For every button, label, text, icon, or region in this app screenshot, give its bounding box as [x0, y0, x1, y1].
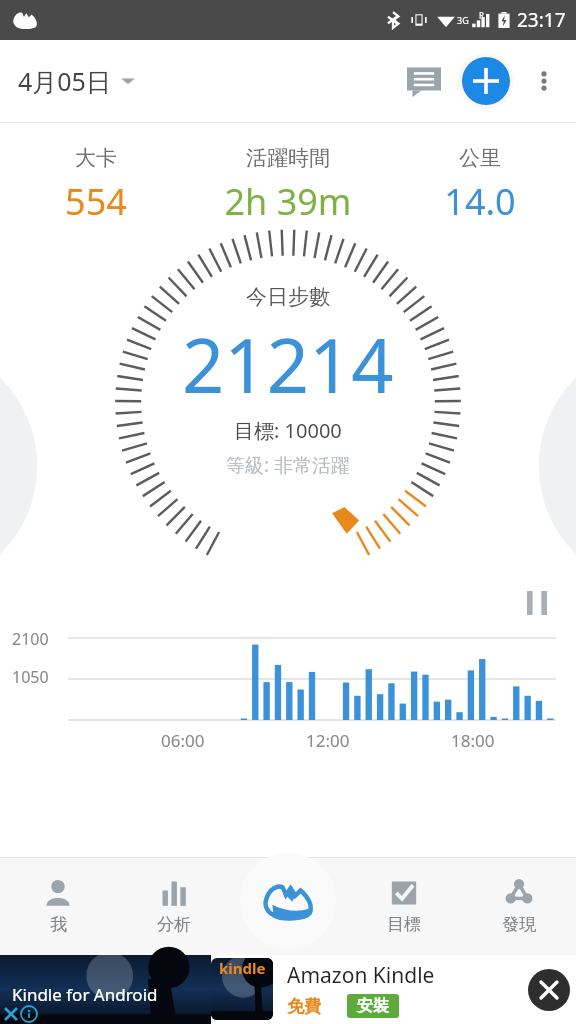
staticText: 3G [457, 14, 469, 26]
staticText: 分析 [157, 914, 191, 935]
staticText: 活躍時間 [246, 145, 330, 171]
staticText: 我 [50, 914, 67, 935]
staticText: 今日步數 [246, 284, 330, 310]
button[interactable]: Pause [520, 586, 554, 620]
staticText: R [479, 10, 484, 21]
staticText: 等級: 非常活躍 [226, 452, 351, 478]
button[interactable]: 安裝 [347, 994, 399, 1018]
button[interactable]: Close ad [2, 1005, 20, 1023]
staticText: 免費 [287, 996, 321, 1017]
staticText: Kindle for Android [12, 983, 158, 1006]
button[interactable]: 發現 [461, 857, 576, 955]
button[interactable]: Steps [240, 853, 336, 949]
button[interactable]: 我 [0, 857, 116, 955]
staticText: 公里 [459, 145, 501, 171]
staticText: 21214 [182, 314, 394, 415]
button[interactable]: 大卡 [0, 145, 192, 226]
staticText: 554 [65, 177, 127, 226]
staticText: 4月05日 [18, 64, 111, 98]
button[interactable]: More options [518, 55, 570, 107]
staticText: 18:00 [451, 729, 495, 752]
button[interactable]: Close advertisement [528, 969, 570, 1011]
staticText: 1050 [12, 666, 49, 688]
staticText: 安裝 [357, 996, 389, 1016]
button[interactable]: Add [454, 49, 518, 113]
button[interactable]: 活躍時間 [192, 145, 384, 226]
button[interactable]: 4月05日 [0, 56, 147, 106]
staticText: 23:17 [517, 7, 566, 33]
staticText: 2100 [12, 628, 49, 650]
staticText: 12:00 [306, 729, 350, 752]
staticText: 06:00 [161, 729, 205, 752]
button[interactable]: 公里 [384, 145, 576, 226]
staticText: 目標 [387, 914, 421, 935]
staticText: 目標: 10000 [234, 417, 342, 444]
staticText: 2h 39m [224, 177, 352, 226]
staticText: 發現 [502, 914, 536, 935]
staticText: kindle [219, 958, 266, 978]
button[interactable]: Kindle for Android [0, 955, 576, 1024]
button[interactable]: 分析 [116, 857, 231, 955]
button[interactable]: 目標 [346, 857, 461, 955]
staticText: 14.0 [444, 177, 516, 226]
staticText: Amazon Kindle [287, 961, 435, 990]
staticText: 大卡 [75, 145, 117, 171]
button[interactable]: Messages [396, 53, 452, 109]
